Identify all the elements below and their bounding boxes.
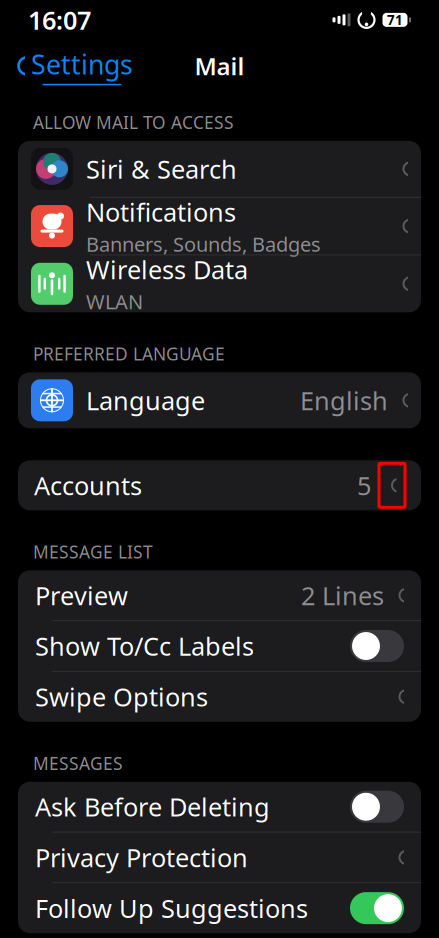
button[interactable]: Ask Before Deleting <box>18 782 421 832</box>
staticText: 16:07 <box>28 3 91 37</box>
button[interactable]: Privacy Protection <box>18 832 421 882</box>
staticText: Language <box>86 383 205 417</box>
button[interactable]: Follow Up Suggestions <box>18 883 421 933</box>
staticText: 5 <box>357 468 371 502</box>
staticText: Accounts <box>34 468 142 502</box>
staticText: English <box>300 383 388 417</box>
staticText: Mail <box>194 50 244 82</box>
button[interactable]: Accounts <box>18 460 421 510</box>
staticText: Ask Before Deleting <box>35 790 270 823</box>
button[interactable]: Show To/Cc Labels <box>18 621 421 671</box>
button[interactable]: Settings <box>2 41 143 90</box>
staticText: Follow Up Suggestions <box>35 891 308 925</box>
staticText: Show To/Cc Labels <box>35 629 254 663</box>
staticText: Banners, Sounds, Badges <box>86 231 321 257</box>
staticText: Wireless Data <box>86 253 248 286</box>
button[interactable]: Notifications <box>18 198 421 255</box>
staticText: MESSAGES <box>33 752 123 775</box>
staticText: WLAN <box>86 288 143 315</box>
button[interactable]: Wireless Data <box>18 255 421 312</box>
staticText: Privacy Protection <box>35 841 248 874</box>
staticText: 71 <box>387 11 403 29</box>
staticText: PREFERRED LANGUAGE <box>33 342 225 365</box>
staticText: Siri & Search <box>86 152 237 186</box>
staticText: Notifications <box>86 195 236 229</box>
button[interactable]: Swipe Options <box>18 672 421 722</box>
staticText: 2 Lines <box>301 578 384 612</box>
button[interactable]: Siri & Search <box>18 141 421 197</box>
button[interactable]: Language <box>18 372 421 428</box>
staticText: Swipe Options <box>35 680 208 713</box>
staticText: MESSAGE LIST <box>33 540 153 563</box>
staticText: Settings <box>31 46 133 82</box>
staticText: ALLOW MAIL TO ACCESS <box>33 111 234 134</box>
staticText: Preview <box>35 578 128 612</box>
button[interactable]: Preview <box>18 570 421 620</box>
